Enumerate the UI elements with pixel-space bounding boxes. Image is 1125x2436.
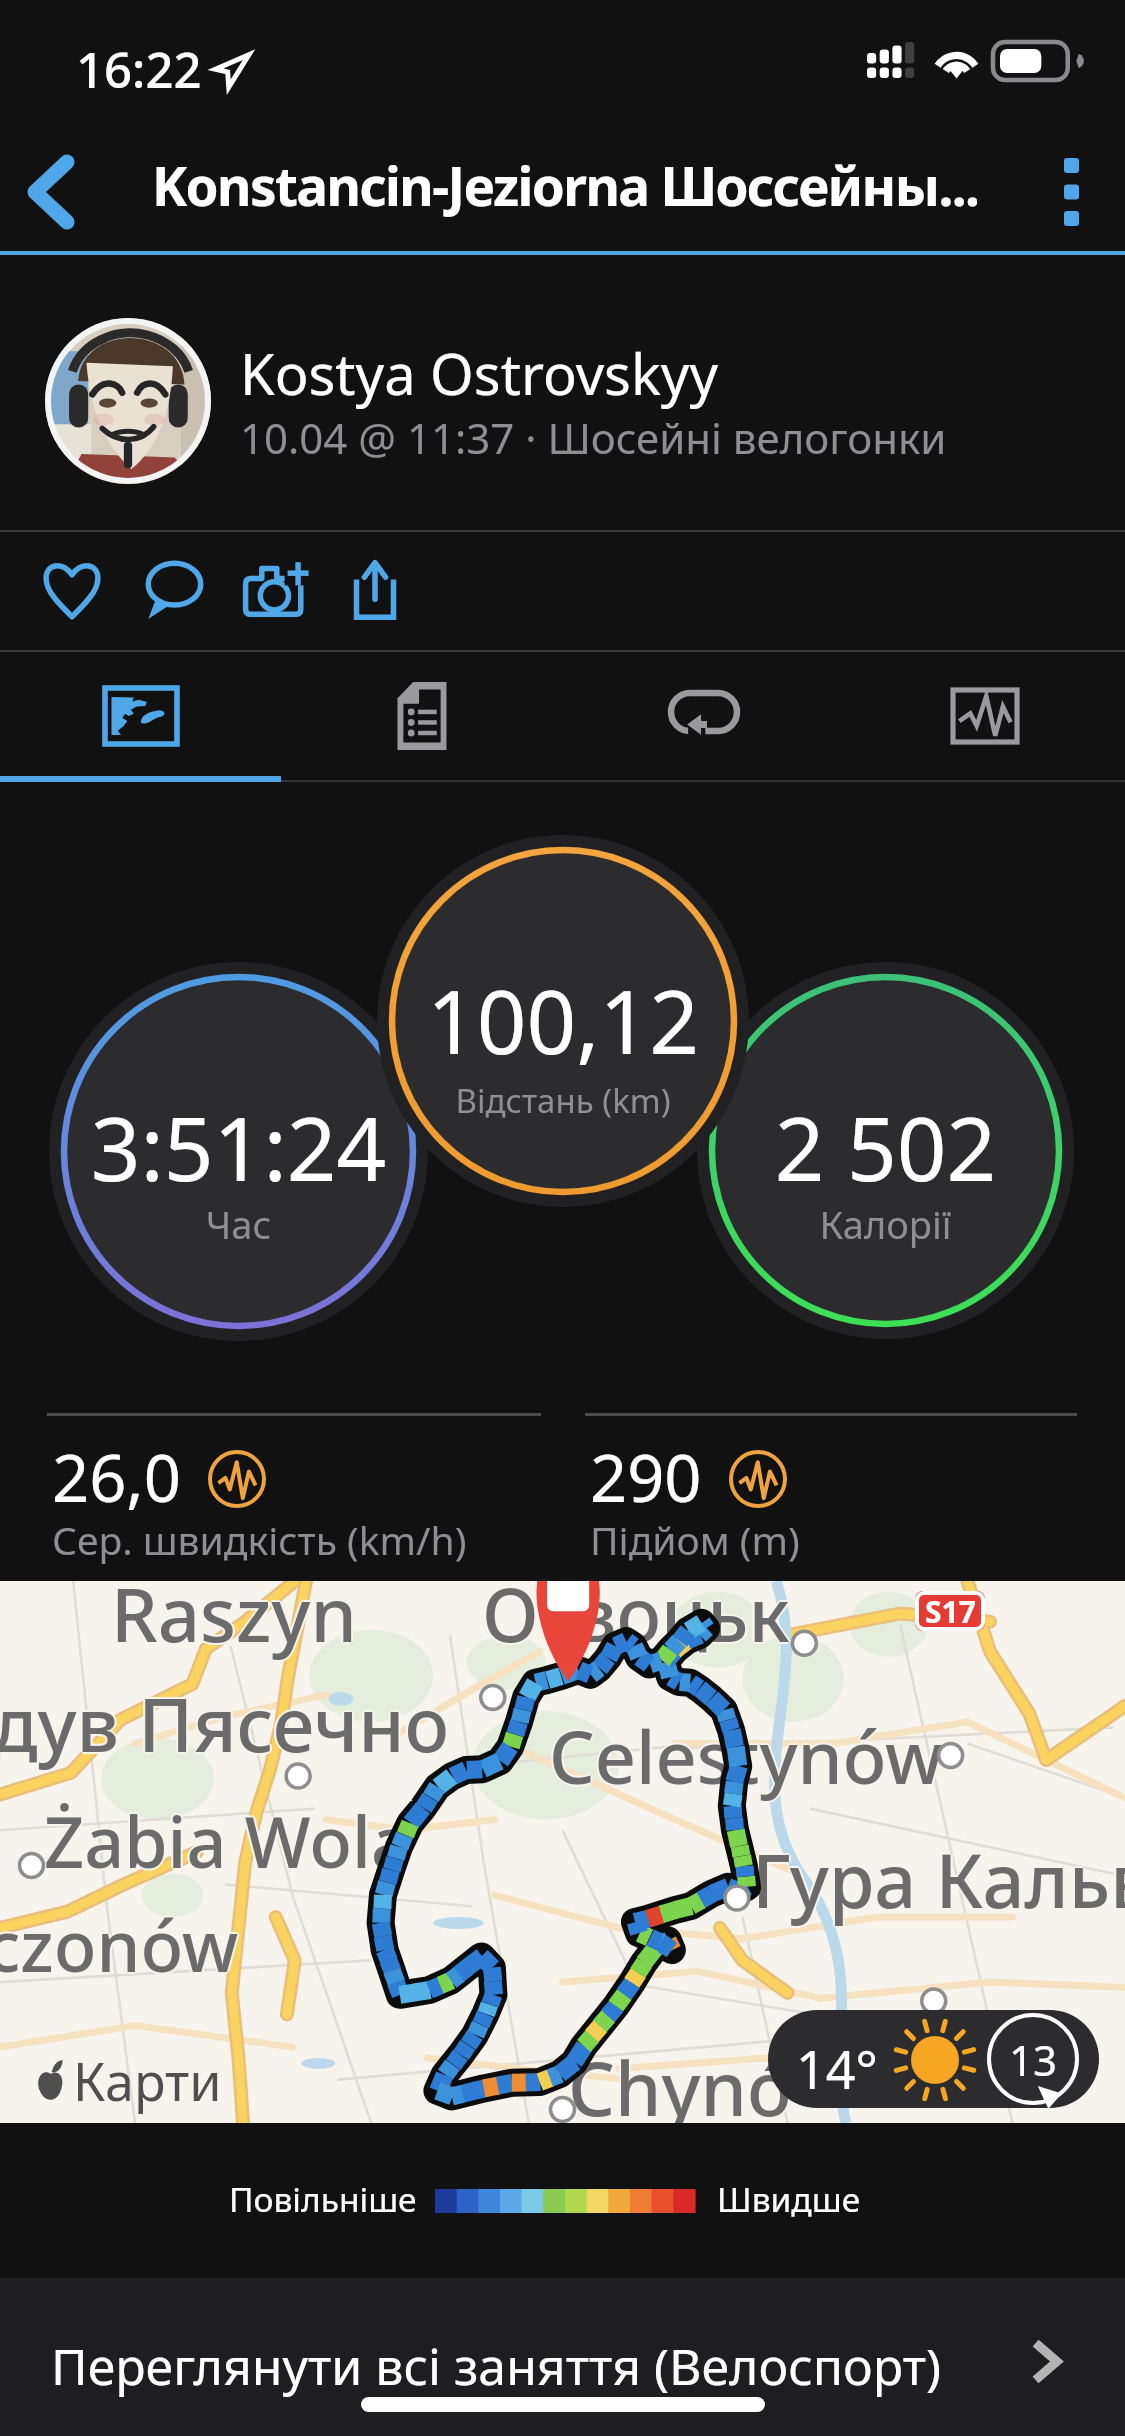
button[interactable]: Laps tab xyxy=(563,652,844,776)
staticText: 26,0 xyxy=(52,1433,181,1522)
staticText: 10.04 @ 11:37 · Шосейні велогонки xyxy=(240,409,947,466)
staticText: Żabia Wola xyxy=(44,1793,411,1888)
button[interactable]: Переглянути всі заняття (Велоспорт) xyxy=(0,2278,1125,2408)
staticText: дув Пясечно xyxy=(0,1673,450,1774)
staticText: 290 xyxy=(590,1433,702,1522)
staticText: Celestynów xyxy=(549,1709,944,1807)
staticText: czonów xyxy=(0,1897,239,1992)
staticText: S17 xyxy=(925,1591,976,1631)
staticText: Celestynów xyxy=(549,1707,944,1805)
staticText: дув Пясечно xyxy=(0,1673,448,1774)
staticText: Celestynów xyxy=(547,1707,942,1805)
staticText: Сер. швидкість (km/h) xyxy=(52,1513,467,1566)
staticText: Chynó xyxy=(566,2037,791,2123)
staticText: 3:51:24 xyxy=(49,1088,428,1206)
staticText: Celestynów xyxy=(549,1705,944,1803)
staticText: Швидше xyxy=(717,2176,861,2222)
staticText: Отвоцьк xyxy=(482,1581,790,1664)
staticText: Час xyxy=(49,1198,428,1250)
button[interactable]: Share xyxy=(331,538,419,642)
staticText: Отвоцьк xyxy=(484,1581,792,1664)
staticText: дув Пясечно xyxy=(0,1675,450,1776)
staticText: Konstancin-Jeziorna Шоссейны... xyxy=(152,149,979,221)
button[interactable]: Details tab xyxy=(281,652,562,776)
staticText: Chynó xyxy=(570,2037,795,2123)
button[interactable]: Kostya Ostrovskyy xyxy=(0,255,1125,530)
button[interactable]: 100,12 xyxy=(377,835,749,1207)
staticText: Raszyn xyxy=(109,1581,355,1664)
staticText: Карти xyxy=(73,2045,222,2116)
staticText: Raszyn xyxy=(111,1581,357,1666)
button[interactable]: Charts tab xyxy=(844,652,1125,776)
staticText: Chynó xyxy=(568,2035,793,2123)
staticText: Гура Кальв xyxy=(752,1831,1125,1932)
staticText: Отвоцьк xyxy=(482,1581,790,1666)
button[interactable]: 2 502 xyxy=(697,962,1074,1339)
staticText: Гура Кальв xyxy=(752,1829,1125,1930)
staticText: 100,12 xyxy=(377,961,749,1079)
staticText: дув Пясечно xyxy=(0,1673,452,1774)
staticText: Chynó xyxy=(568,2037,793,2123)
staticText: czonów xyxy=(0,1895,239,1990)
button[interactable]: Add photo xyxy=(223,538,327,642)
staticText: Żabia Wola xyxy=(44,1791,411,1886)
button[interactable]: Comment xyxy=(124,538,225,642)
staticText: czonów xyxy=(0,1897,237,1992)
staticText: Żabia Wola xyxy=(44,1795,411,1890)
staticText: Переглянути всі заняття (Велоспорт) xyxy=(51,2332,941,2400)
staticText: Відстань (km) xyxy=(377,1078,749,1123)
button[interactable]: More options xyxy=(1017,132,1125,251)
staticText: Raszyn xyxy=(111,1581,357,1662)
staticText: Żabia Wola xyxy=(42,1793,409,1888)
staticText: 2 502 xyxy=(697,1088,1074,1206)
staticText: Отвоцьк xyxy=(482,1581,790,1662)
staticText: Гура Кальв xyxy=(754,1829,1125,1930)
staticText: czonów xyxy=(0,1899,239,1994)
staticText: дув Пясечно xyxy=(0,1671,450,1772)
button[interactable]: 3:51:24 xyxy=(49,962,428,1341)
staticText: 13 xyxy=(1009,2031,1058,2088)
staticText: Отвоцьк xyxy=(480,1581,788,1664)
staticText: Chynó xyxy=(568,2039,793,2123)
staticText: 14° xyxy=(796,2033,878,2104)
staticText: 16:22 xyxy=(76,36,202,103)
button[interactable]: Route map xyxy=(0,1581,1125,2123)
button[interactable]: Map tab xyxy=(0,652,281,776)
staticText: Kostya Ostrovskyy xyxy=(240,335,718,411)
staticText: Повільніше xyxy=(229,2176,417,2222)
staticText: czonów xyxy=(0,1897,241,1992)
button[interactable]: Weather xyxy=(768,2010,1099,2108)
staticText: Raszyn xyxy=(113,1581,359,1664)
staticText: Калорії xyxy=(697,1198,1074,1250)
staticText: Celestynów xyxy=(551,1707,946,1805)
staticText: Підйом (m) xyxy=(590,1513,800,1566)
button[interactable]: Back xyxy=(0,132,110,251)
staticText: Гура Кальв xyxy=(752,1827,1125,1928)
staticText: Raszyn xyxy=(111,1581,357,1664)
button[interactable]: Like xyxy=(23,538,121,642)
staticText: Żabia Wola xyxy=(46,1793,413,1888)
staticText: Гура Кальв xyxy=(750,1829,1125,1930)
